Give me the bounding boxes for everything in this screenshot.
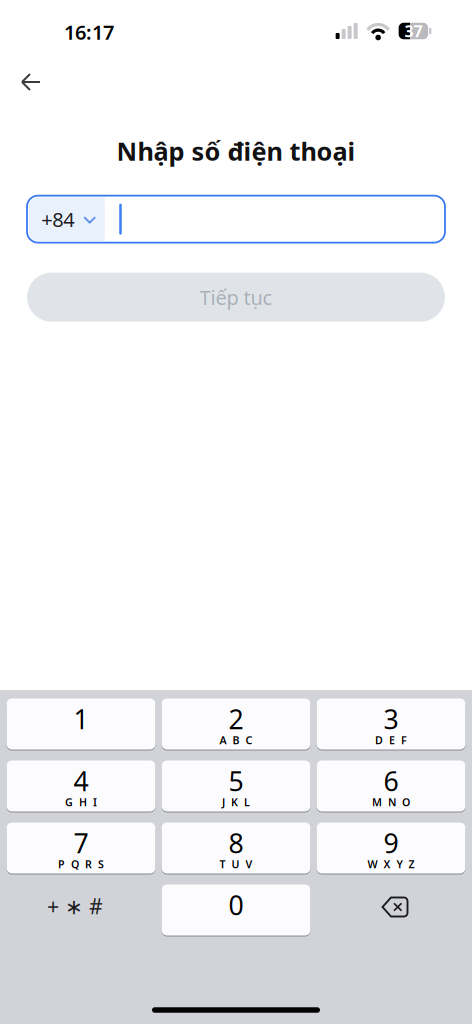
button[interactable]: Back <box>0 54 42 92</box>
staticText: A B C <box>219 733 252 747</box>
staticText: 16:17 <box>64 19 114 45</box>
button[interactable]: More symbols <box>6 884 155 936</box>
staticText: 5 <box>228 763 243 799</box>
staticText: 3 <box>383 701 398 737</box>
staticText: J K L <box>222 795 250 809</box>
staticText: W X Y Z <box>367 857 414 871</box>
button[interactable]: 1 <box>6 698 155 750</box>
staticText: D E F <box>375 733 407 747</box>
staticText: Nhập số điện thoại <box>116 134 355 168</box>
button[interactable]: 6 <box>316 760 465 812</box>
button[interactable]: 9 <box>316 822 465 874</box>
staticText: 2 <box>228 701 243 737</box>
staticText: 9 <box>383 825 398 861</box>
button[interactable]: 5 <box>161 760 310 812</box>
button[interactable]: Tiếp tục <box>27 273 445 322</box>
staticText: +84 <box>41 206 74 232</box>
button[interactable]: 3 <box>316 698 465 750</box>
staticText: 7 <box>73 825 88 861</box>
staticText: 4 <box>73 763 88 799</box>
staticText: P Q R S <box>58 857 104 871</box>
button[interactable]: Country code +84 <box>29 197 105 241</box>
button[interactable]: 8 <box>161 822 310 874</box>
staticText: G H I <box>65 795 97 809</box>
button[interactable]: Delete <box>316 884 465 936</box>
staticText: 6 <box>383 763 398 799</box>
staticText: M N O <box>372 795 410 809</box>
staticText: 1 <box>73 701 88 737</box>
button[interactable]: 7 <box>6 822 155 874</box>
button[interactable]: 4 <box>6 760 155 812</box>
staticText: T U V <box>219 857 252 871</box>
staticText: Tiếp tục <box>199 284 272 310</box>
button[interactable]: 2 <box>161 698 310 750</box>
button[interactable]: 0 <box>161 884 310 936</box>
staticText: 37 <box>404 20 422 42</box>
staticText: 0 <box>228 887 243 923</box>
staticText: 8 <box>228 825 243 861</box>
button[interactable]: +84 <box>27 196 445 243</box>
staticText: + ∗ # <box>47 892 103 920</box>
